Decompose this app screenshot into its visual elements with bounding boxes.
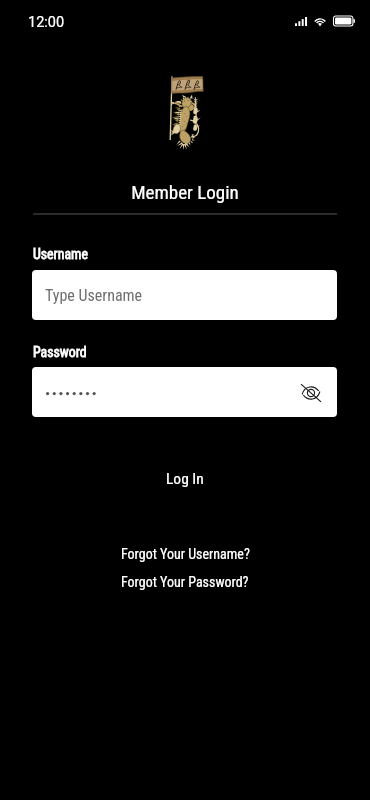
button[interactable]: Type Username <box>32 270 337 320</box>
button[interactable]: Log In <box>125 459 245 497</box>
staticText: Forgot Your Password? <box>121 574 249 590</box>
staticText: Username <box>33 246 88 262</box>
staticText: 12:00 <box>28 14 65 31</box>
button[interactable]: Forgot Your Username? <box>107 542 264 566</box>
staticText: Type Username <box>45 286 143 305</box>
button[interactable]: Show password <box>32 367 337 417</box>
button[interactable]: Forgot Your Password? <box>107 570 263 594</box>
staticText: Forgot Your Username? <box>121 546 250 562</box>
staticText: Log In <box>166 470 204 488</box>
staticText: Password <box>33 344 87 360</box>
button[interactable]: Show password <box>297 379 324 406</box>
staticText: Member Login <box>0 181 370 203</box>
